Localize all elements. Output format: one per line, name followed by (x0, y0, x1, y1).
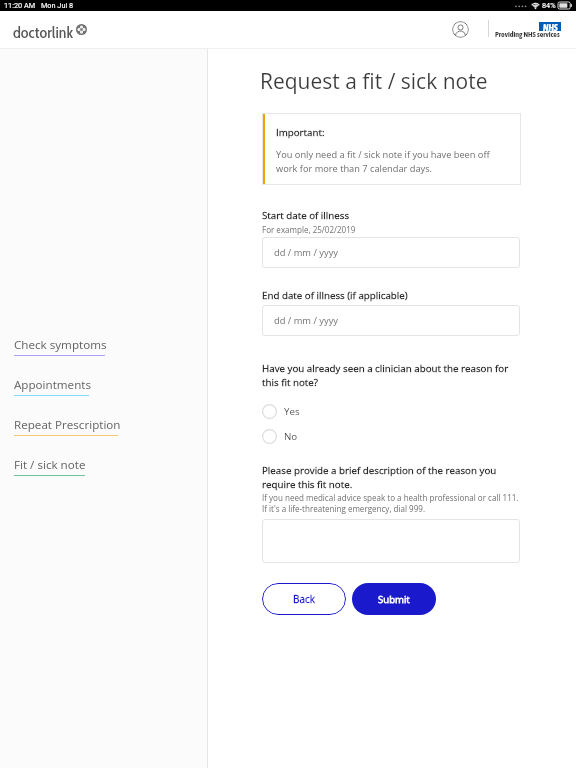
button[interactable]: Appointments (0, 377, 91, 399)
staticText: Important: (276, 126, 325, 139)
button[interactable]: Yes (262, 404, 300, 419)
staticText: Please provide a brief description of th… (262, 464, 497, 490)
staticText: Fit / sick note (14, 457, 86, 473)
button[interactable]: Account (452, 21, 469, 38)
button[interactable]: Fit / sick note (0, 457, 86, 479)
staticText: doctorlink (13, 23, 74, 42)
staticText: End date of illness (if applicable) (262, 289, 408, 302)
staticText: If it's a life-threatening emergency, di… (262, 503, 426, 514)
staticText: 11:20 AM (4, 1, 36, 10)
button[interactable]: Back (262, 583, 346, 615)
button[interactable]: No (262, 429, 298, 444)
staticText: If you need medical advice speak to a he… (262, 492, 519, 503)
staticText: You only need a fit / sick note if you h… (276, 148, 490, 174)
staticText: For example, 25/02/2019 (262, 224, 356, 235)
staticText: Repeat Prescription (14, 417, 121, 433)
staticText: Start date of illness (262, 209, 350, 222)
button[interactable]: Check symptoms (0, 337, 107, 359)
staticText: Providing NHS services (495, 30, 560, 39)
button[interactable] (262, 519, 520, 563)
button[interactable]: Repeat Prescription (0, 417, 121, 439)
button[interactable]: Submit (352, 583, 436, 615)
staticText: Submit (378, 593, 410, 606)
button[interactable]: dd / mm / yyyy (262, 305, 520, 336)
staticText: Mon Jul 8 (41, 1, 74, 10)
staticText: No (284, 430, 298, 443)
staticText: NHS (543, 22, 558, 31)
staticText: Appointments (14, 377, 91, 393)
button[interactable]: dd / mm / yyyy (262, 237, 520, 268)
staticText: Yes (284, 405, 300, 418)
staticText: dd / mm / yyyy (274, 314, 339, 327)
staticText: Check symptoms (14, 337, 107, 353)
staticText: Back (293, 592, 315, 606)
staticText: dd / mm / yyyy (274, 246, 339, 259)
staticText: Request a fit / sick note (260, 67, 488, 96)
staticText: Have you already seen a clinician about … (262, 362, 509, 388)
staticText: 84% (542, 1, 556, 10)
